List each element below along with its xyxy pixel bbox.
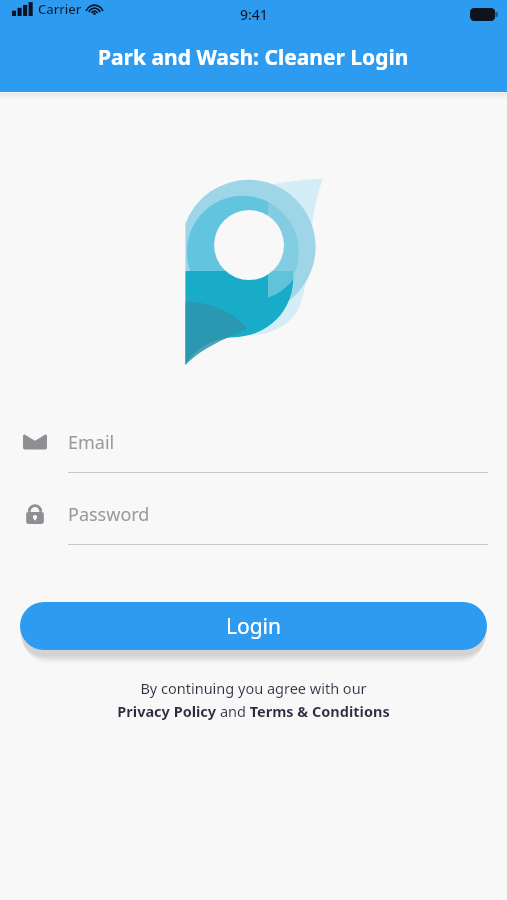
staticText: Email [68, 430, 115, 455]
button[interactable]: Login [20, 602, 487, 650]
staticText: Login [226, 612, 282, 641]
other: Password icon [22, 501, 48, 527]
button[interactable]: By continuing you agree with our [0, 678, 507, 721]
staticText: By continuing you agree with our [140, 678, 367, 698]
button[interactable]: Email icon [0, 429, 507, 473]
staticText: Carrier [38, 0, 82, 18]
other: Email icon [22, 429, 48, 455]
staticText: Park and Wash: Cleaner Login [98, 43, 409, 72]
staticText: Privacy Policy and Terms & Conditions [117, 701, 390, 721]
staticText: 9:41 [240, 5, 268, 24]
staticText: Password [68, 502, 150, 527]
button[interactable]: Password icon [0, 501, 507, 545]
